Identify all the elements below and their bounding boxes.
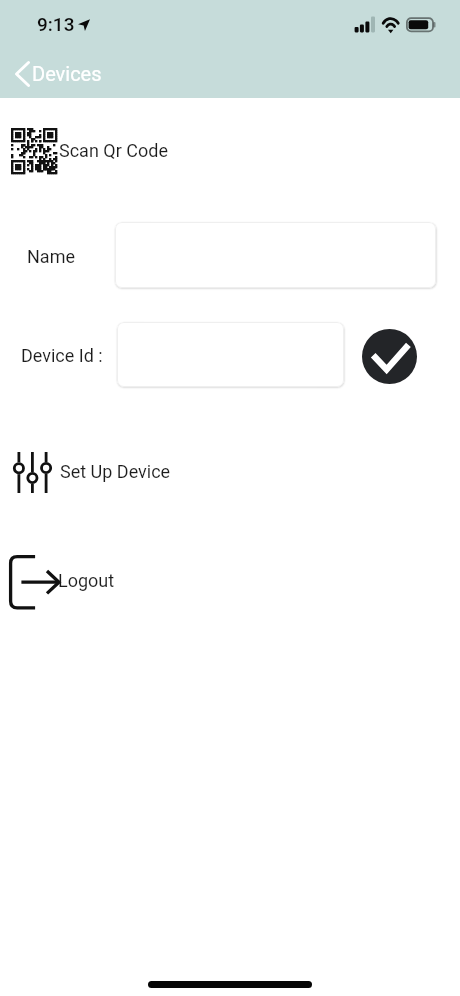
staticText: Name — [27, 246, 75, 267]
staticText: 9:13 — [37, 13, 75, 35]
staticText: Logout — [58, 570, 115, 591]
button[interactable]: Logout — [0, 551, 460, 611]
staticText: Devices — [32, 62, 102, 85]
staticText: Scan Qr Code — [59, 140, 168, 161]
button[interactable]: Scan Qr Code — [0, 125, 460, 177]
button[interactable]: Text field — [117, 322, 344, 387]
button[interactable]: Set Up Device — [0, 450, 460, 495]
button[interactable]: Back to Devices — [11, 57, 107, 91]
button[interactable]: Confirm — [362, 329, 417, 384]
staticText: Device Id : — [21, 345, 103, 366]
staticText: Set Up Device — [60, 461, 171, 482]
